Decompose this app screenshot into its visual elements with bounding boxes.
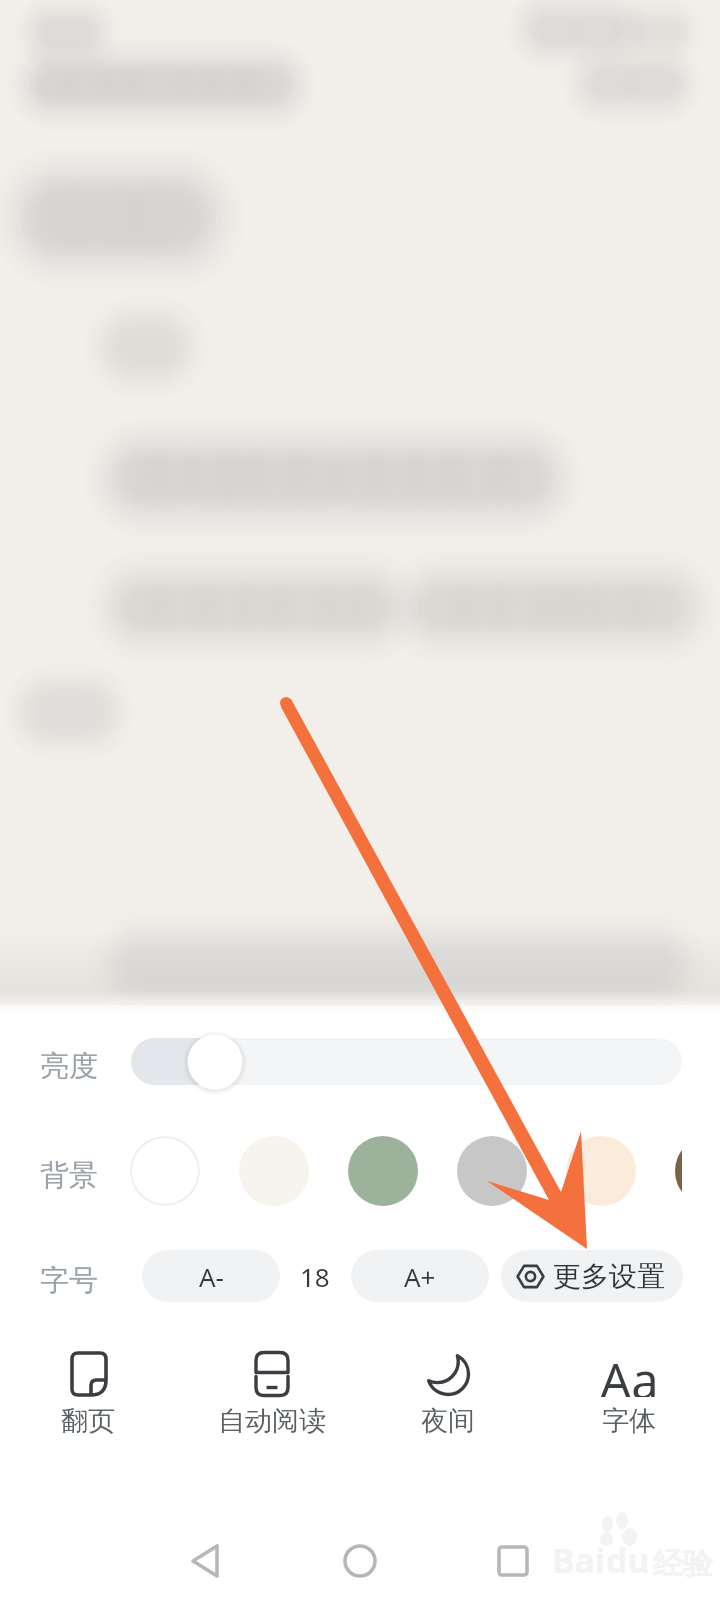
staticText: 背景	[40, 1157, 98, 1191]
staticText: 亮度	[40, 1048, 98, 1082]
staticText: 字号	[40, 1262, 98, 1296]
staticText: Bai	[552, 1537, 606, 1583]
staticText: 夜间	[421, 1404, 475, 1438]
button[interactable]: Background colour 0	[130, 1136, 200, 1206]
button[interactable]: A-	[142, 1250, 280, 1302]
staticText: Aa	[600, 1347, 659, 1397]
button[interactable]: Background colour 5	[675, 1136, 682, 1206]
button[interactable]: Background colour 1	[239, 1136, 309, 1206]
button[interactable]: Font	[559, 1349, 699, 1444]
button[interactable]: Recents	[483, 1531, 543, 1591]
button[interactable]: Back	[175, 1531, 235, 1591]
button[interactable]: Page turn mode	[18, 1349, 158, 1444]
staticText: A-	[199, 1259, 224, 1294]
staticText: A+	[404, 1259, 436, 1294]
button[interactable]: Home	[330, 1531, 390, 1591]
button[interactable]: Background colour 3	[457, 1136, 527, 1206]
staticText: 自动阅读	[218, 1404, 326, 1438]
staticText: 字体	[602, 1404, 656, 1438]
button[interactable]: 更多设置	[501, 1250, 683, 1302]
button[interactable]: A+	[351, 1250, 489, 1302]
staticText: 18	[300, 1259, 330, 1294]
button[interactable]: Brightness	[131, 1038, 682, 1085]
button[interactable]: Background colour 2	[348, 1136, 418, 1206]
button[interactable]: Background colour 4	[566, 1136, 636, 1206]
button[interactable]: Night mode	[378, 1349, 518, 1444]
staticText: 翻页	[61, 1404, 115, 1438]
staticText: 经验	[653, 1545, 713, 1583]
staticText: 更多设置	[553, 1259, 665, 1294]
button[interactable]: Auto read	[202, 1349, 342, 1444]
staticText: du	[606, 1537, 650, 1583]
